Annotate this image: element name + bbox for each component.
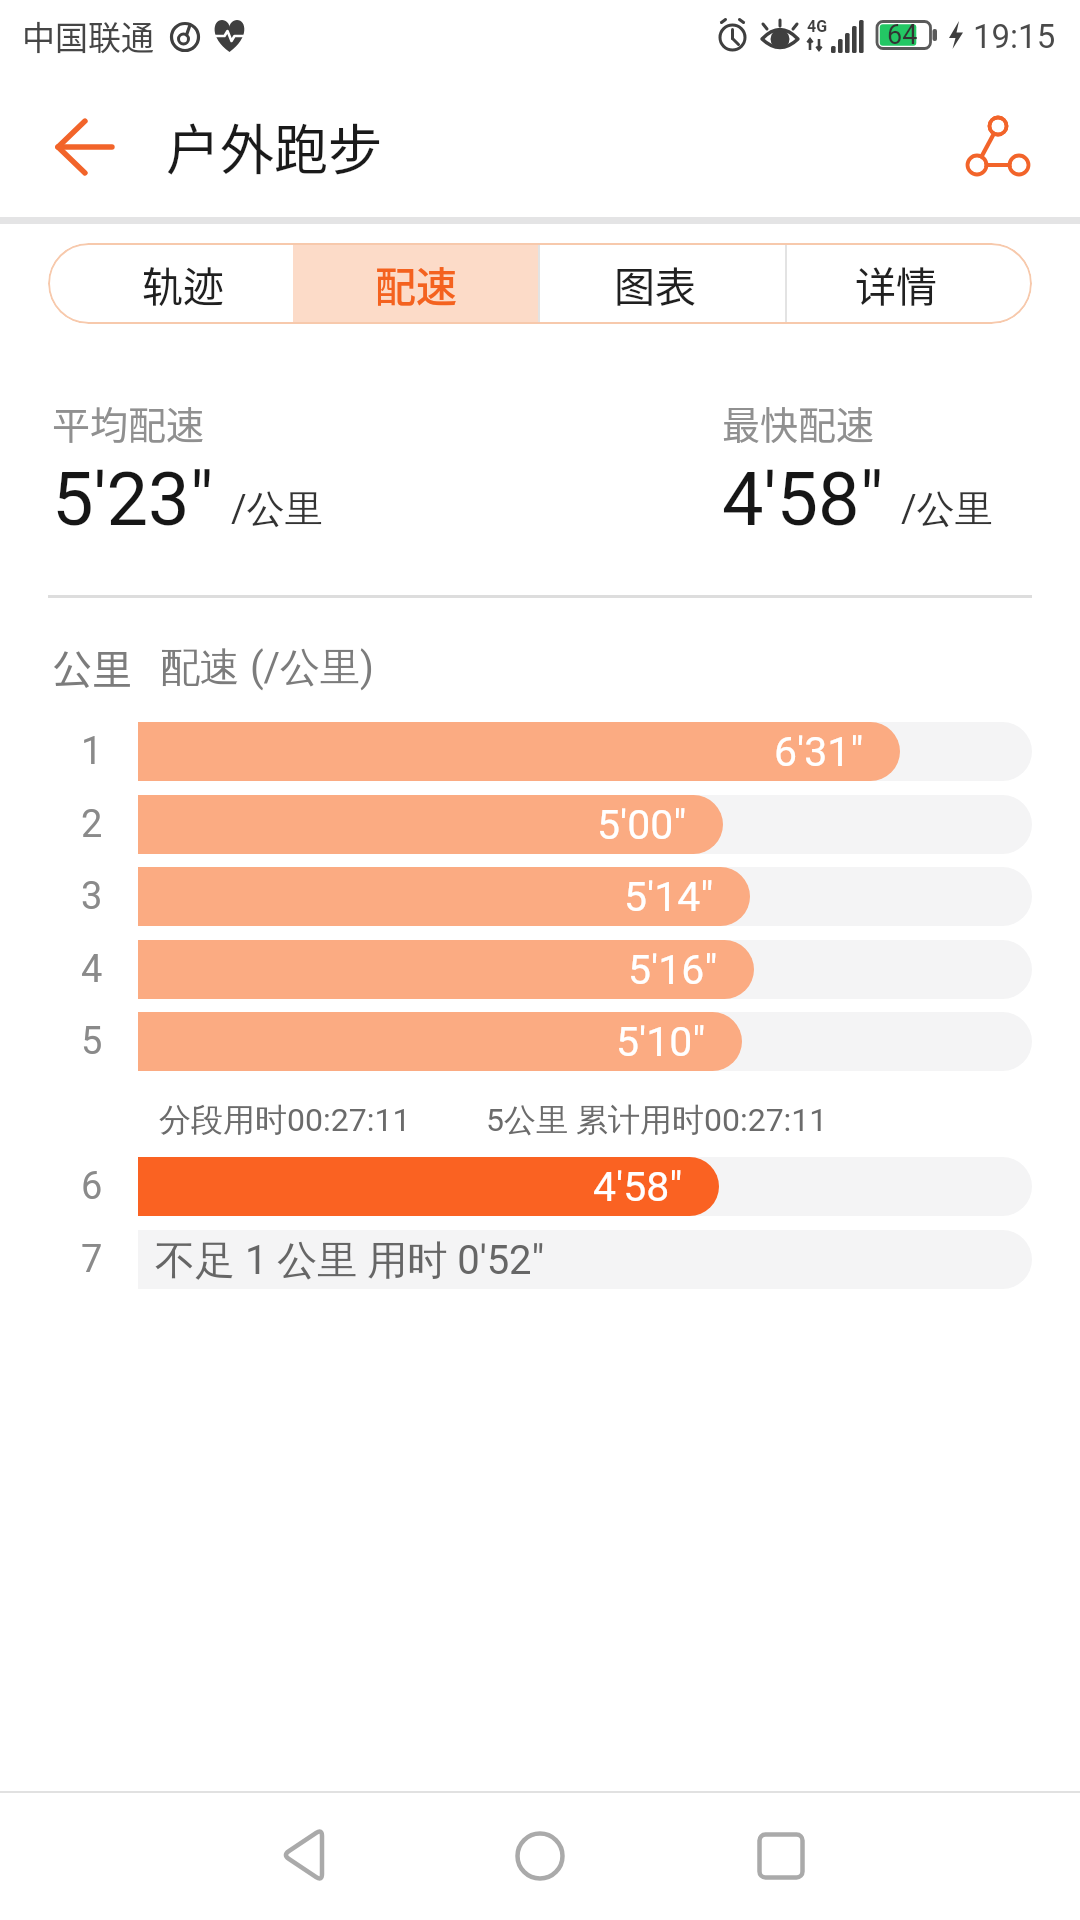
staticText: 公里 [52,638,132,696]
staticText: 5'16" [628,946,718,994]
staticText: 6 [81,1164,103,1209]
staticText: 5 [81,1019,103,1064]
staticText: 中国联通 [22,12,154,60]
staticText: 5公里 累计用时00:27:11 [486,1100,828,1140]
button[interactable]: 图表 [540,243,785,324]
staticText: 5'14" [624,873,714,921]
staticText: /公里 [231,485,323,533]
button[interactable] [252,1808,352,1904]
staticText: 分段用时00:27:11 [159,1100,411,1140]
staticText: 5'23" [52,456,214,543]
staticText: 平均配速 [52,395,205,450]
staticText: 3 [81,874,103,919]
staticText: 64 [887,19,918,51]
button[interactable] [490,1808,590,1904]
staticText: 2 [81,802,103,847]
button[interactable] [950,100,1046,192]
staticText: 轨迹 [142,254,224,313]
staticText: 4G [807,17,828,36]
staticText: 详情 [855,254,937,313]
button[interactable]: 轨迹 [48,243,293,324]
staticText: 不足 1 公里 用时 0'52" [155,1235,545,1285]
staticText: 4 [81,947,103,992]
staticText: 5'10" [616,1018,706,1066]
button[interactable]: 配速 [293,243,538,324]
staticText: /公里 [901,485,993,533]
button[interactable] [28,102,140,192]
staticText: 配速 (/公里) [160,642,375,692]
staticText: 配速 [375,254,457,313]
staticText: 5'00" [597,801,687,849]
staticText: 4'58" [593,1163,683,1211]
staticText: 最快配速 [722,395,875,450]
staticText: 6'31" [774,728,864,776]
button[interactable] [731,1808,831,1904]
staticText: 图表 [614,254,696,313]
staticText: 1 [81,729,103,774]
staticText: 7 [81,1237,103,1282]
staticText: 19:15 [973,17,1056,56]
button[interactable]: 详情 [787,243,1032,324]
staticText: 户外跑步 [166,107,382,185]
staticText: 4'58" [722,456,884,543]
